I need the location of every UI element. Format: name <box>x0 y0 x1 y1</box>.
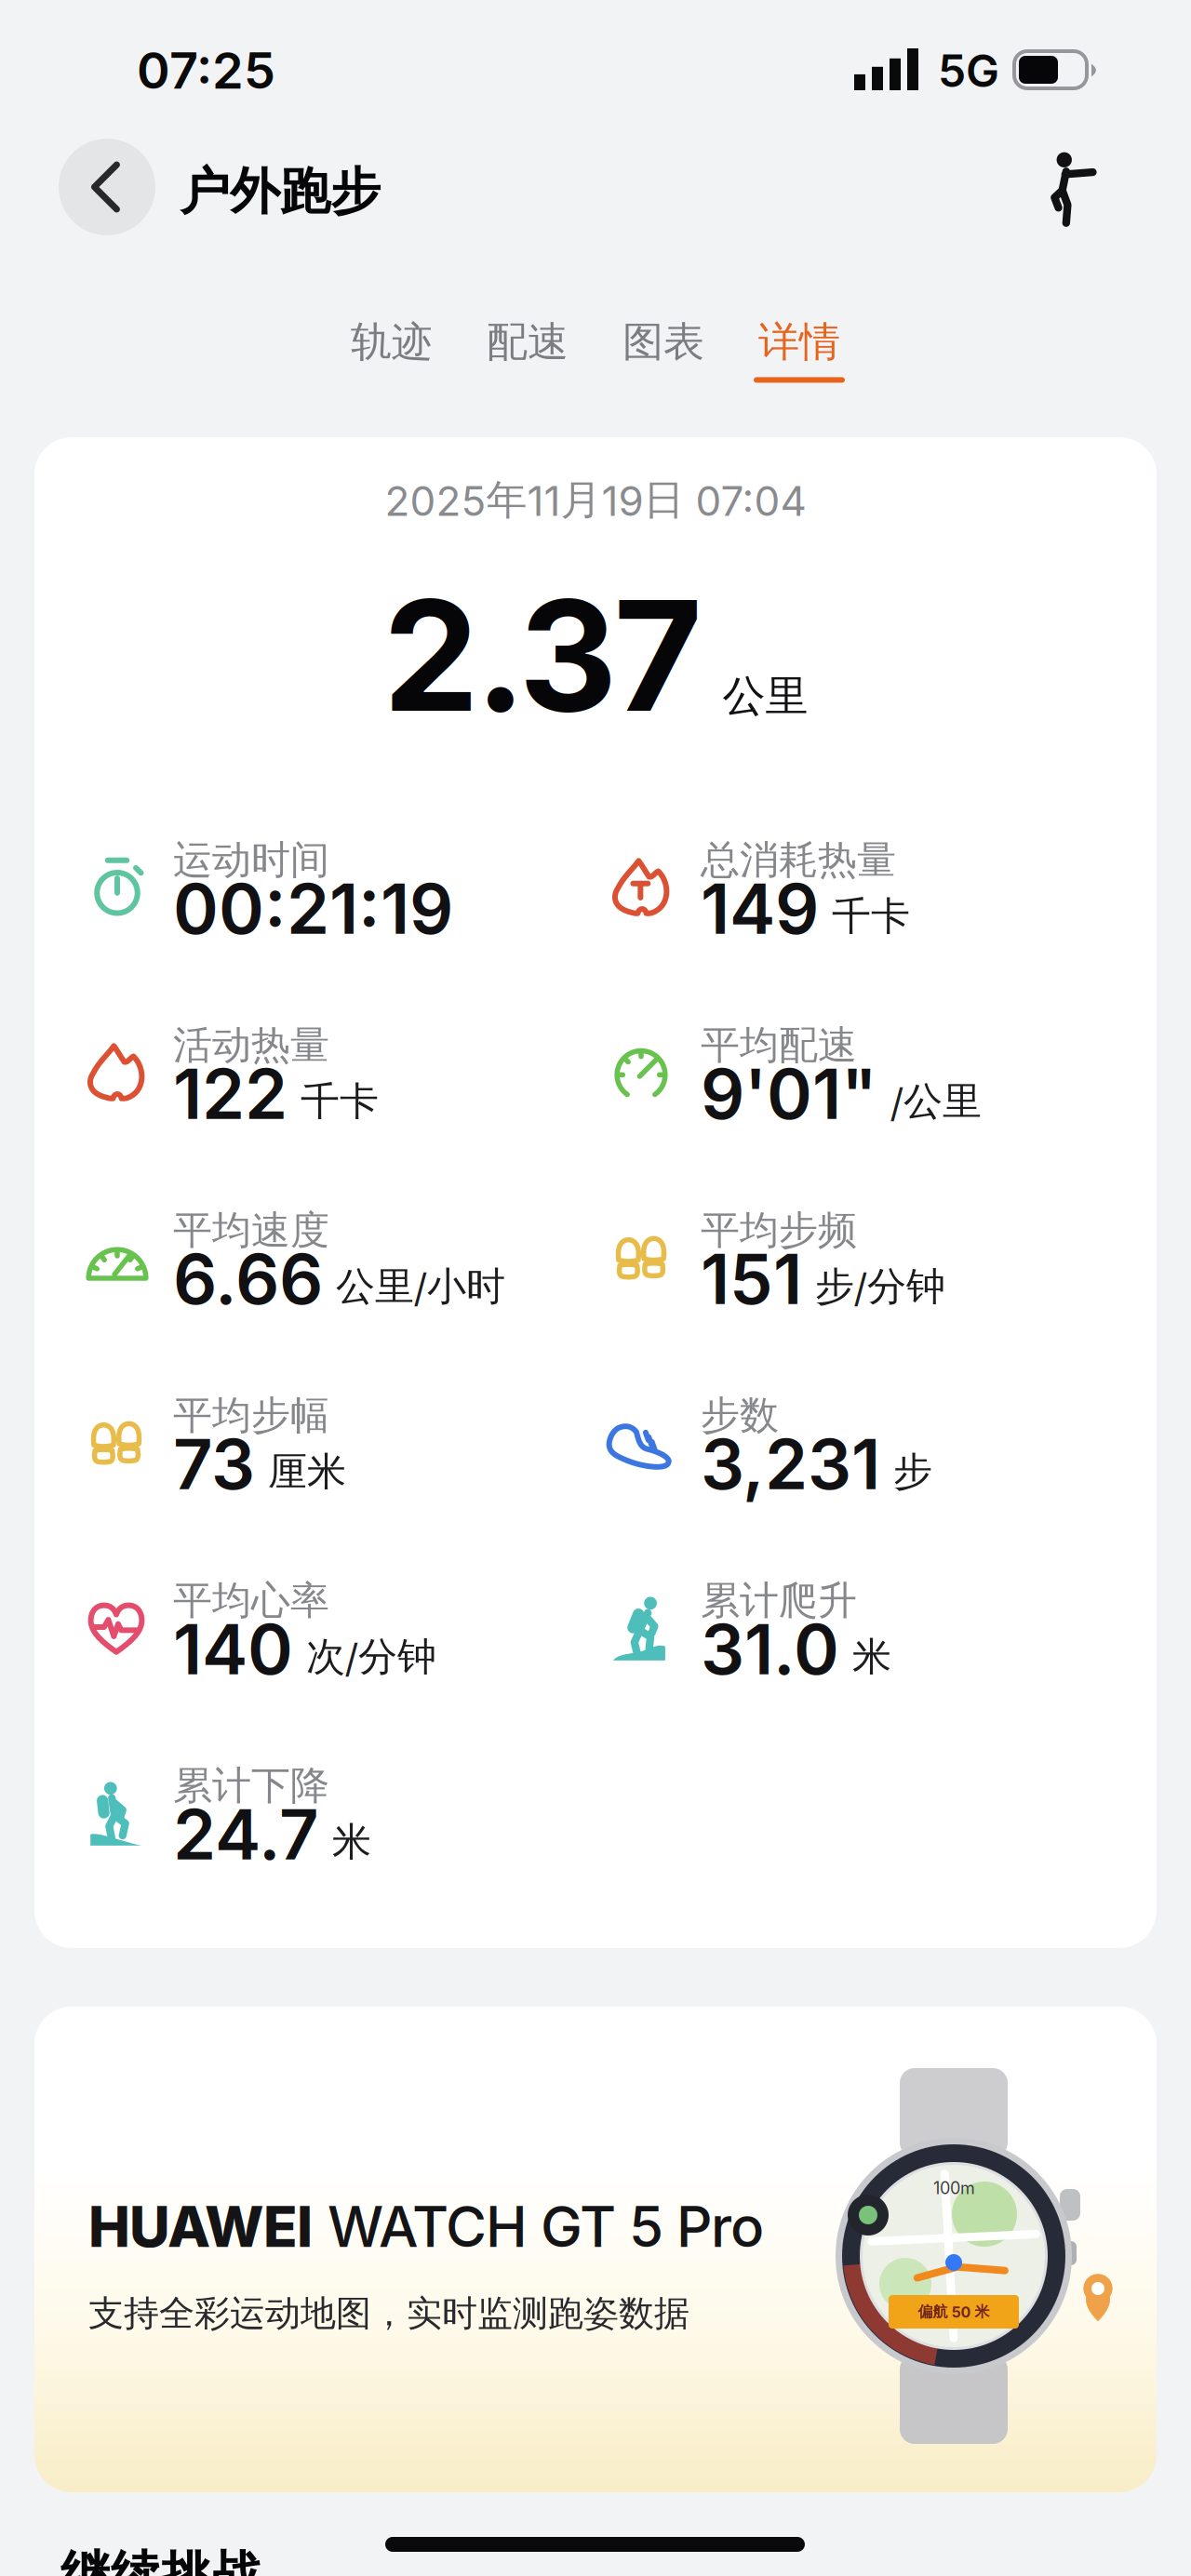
button[interactable]: HUAWEI <box>34 2007 1157 2492</box>
staticText: 平均速度 <box>173 1206 329 1255</box>
staticText: WATCH GT 5 Pro <box>328 2193 764 2260</box>
staticText: 6.66 <box>173 1237 323 1321</box>
staticText: 平均配速 <box>701 1021 857 1070</box>
button[interactable]: Running posture <box>1046 153 1094 225</box>
staticText: 5G <box>938 44 999 98</box>
staticText: 平均步频 <box>701 1206 857 1255</box>
staticText: 2.37 <box>383 563 702 747</box>
staticText: 3,231 <box>701 1422 880 1506</box>
staticText: 千卡 <box>832 892 910 941</box>
staticText: 100m <box>933 2178 975 2198</box>
staticText: 继续挑战 <box>60 2543 261 2576</box>
staticText: 151 <box>701 1237 802 1321</box>
staticText: 步数 <box>701 1391 779 1440</box>
staticText: 支持全彩运动地图，实时监测跑姿数据 <box>88 2291 689 2336</box>
button[interactable]: Back <box>59 139 155 235</box>
staticText: 次/分钟 <box>306 1632 436 1682</box>
staticText: 平均步幅 <box>173 1391 329 1440</box>
staticText: 2025年11月19日 07:04 <box>385 474 806 526</box>
staticText: 轨迹 <box>351 316 433 368</box>
staticText: 详情 <box>758 316 840 368</box>
staticText: /公里 <box>890 1077 982 1126</box>
staticText: 运动时间 <box>173 835 329 885</box>
staticText: 73 <box>173 1422 255 1506</box>
staticText: 140 <box>173 1608 293 1691</box>
staticText: 活动热量 <box>173 1021 329 1070</box>
staticText: 07:25 <box>137 40 275 101</box>
staticText: 累计爬升 <box>701 1576 857 1625</box>
staticText: 步/分钟 <box>815 1262 945 1311</box>
staticText: 平均心率 <box>173 1576 329 1625</box>
staticText: 公里 <box>723 669 808 723</box>
staticText: 配速 <box>487 316 569 368</box>
button[interactable]: 轨迹 <box>346 316 437 383</box>
staticText: 步 <box>893 1447 932 1496</box>
button[interactable]: 图表 <box>618 316 709 383</box>
staticText: 149 <box>701 867 819 950</box>
staticText: 米 <box>332 1817 371 1867</box>
staticText: 千卡 <box>301 1077 379 1126</box>
staticText: 图表 <box>622 316 704 368</box>
staticText: 公里/小时 <box>336 1262 505 1311</box>
staticText: 24.7 <box>173 1793 319 1876</box>
button[interactable]: 配速 <box>482 316 573 383</box>
staticText: 厘米 <box>268 1447 346 1496</box>
button[interactable]: 详情 <box>754 316 845 383</box>
staticText: 9'01" <box>701 1052 877 1135</box>
staticText: 户外跑步 <box>180 160 381 223</box>
staticText: 总消耗热量 <box>701 835 896 885</box>
staticText: 偏航 50 米 <box>918 2302 990 2321</box>
staticText: HUAWEI <box>88 2193 313 2260</box>
staticText: 00:21:19 <box>173 867 453 950</box>
staticText: 122 <box>173 1052 288 1135</box>
staticText: 米 <box>852 1632 891 1682</box>
staticText: 31.0 <box>701 1608 839 1691</box>
staticText: 累计下降 <box>173 1761 329 1810</box>
